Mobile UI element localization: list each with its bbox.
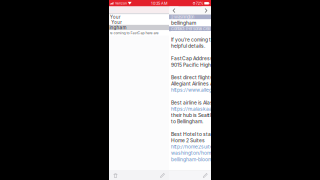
button[interactable]: washington/home2 — [171, 150, 211, 156]
staticText: Your — [111, 20, 122, 25]
staticText: Best airline is Alask — [171, 100, 216, 106]
staticText: https://www.alleg — [171, 87, 212, 93]
staticText: https://m.alaskaai — [171, 106, 213, 112]
button[interactable]: Forward — [201, 6, 210, 14]
button[interactable]: Your — [109, 20, 169, 25]
staticText: Your — [110, 14, 121, 20]
staticText: to Bellingham. — [171, 119, 203, 125]
button[interactable]: New note — [158, 172, 166, 179]
staticText: 10:35 AM — [151, 1, 167, 6]
staticText: re coming to FastCap here are — [110, 31, 159, 35]
staticText: FastCap Address — [171, 56, 213, 62]
staticText: washington/home2 — [171, 150, 217, 156]
staticText: ingham — [110, 25, 127, 30]
staticText: bellingham — [171, 20, 196, 26]
button[interactable]: http://home2suites — [171, 144, 211, 150]
button[interactable]: New note — [202, 172, 209, 179]
staticText: helpful details. — [171, 43, 205, 49]
button[interactable]: Delete — [111, 172, 119, 179]
button[interactable]: Your — [109, 14, 169, 20]
button[interactable]: ingham — [109, 25, 169, 30]
button[interactable]: bellingham-bloom — [171, 156, 211, 162]
staticText: If you're coming to — [171, 37, 214, 43]
staticText: Best direct flights: — [171, 74, 214, 80]
staticText: http://home2suites — [171, 144, 216, 150]
staticText: 72% — [196, 1, 204, 6]
button[interactable]: Back — [169, 6, 178, 14]
staticText: Contact: Personal Cell — [171, 26, 210, 31]
staticText: 9015 Pacific High — [171, 62, 211, 68]
staticText: Home 2 Suites — [171, 137, 205, 143]
button[interactable]: https://m.alaskaai — [171, 106, 211, 112]
staticText: Allegiant Airlines A — [171, 81, 213, 87]
staticText: their hub is Seattle — [171, 112, 214, 118]
staticText: 2 Washington — [171, 15, 194, 19]
staticText: Verizon — [115, 1, 127, 5]
staticText: Best Hotel to stay a — [171, 131, 218, 137]
button[interactable]: re coming to FastCap here are — [109, 30, 169, 36]
button[interactable]: https://www.alleg — [171, 87, 211, 93]
staticText: bellingham-bloom — [171, 156, 212, 162]
